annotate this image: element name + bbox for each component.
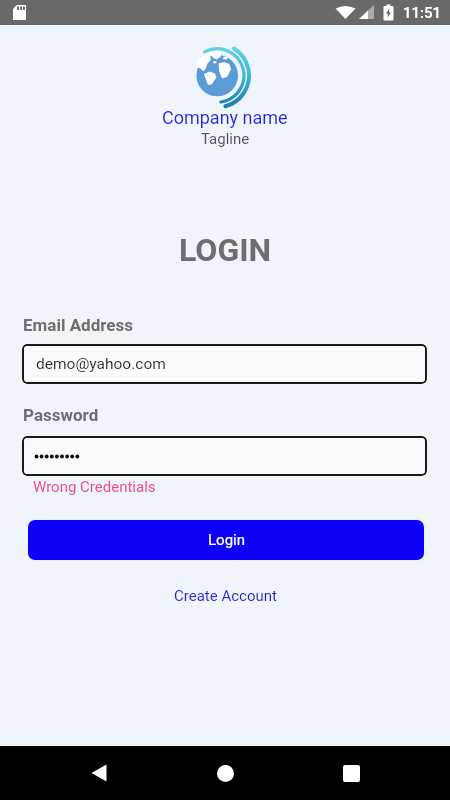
staticText: 11:51: [403, 4, 442, 22]
staticText: Wrong Credentials: [33, 478, 156, 496]
staticText: Login: [208, 531, 245, 549]
staticText: Tagline: [201, 130, 250, 148]
button[interactable]: demo@yahoo.com: [22, 344, 427, 384]
button[interactable]: [22, 436, 427, 476]
staticText: demo@yahoo.com: [36, 355, 166, 373]
staticText: Company name: [162, 107, 288, 128]
staticText: Email Address: [23, 315, 134, 335]
staticText: LOGIN: [179, 231, 272, 269]
button[interactable]: Login: [28, 520, 424, 560]
button[interactable]: [205, 753, 245, 793]
button[interactable]: [331, 753, 371, 793]
staticText: Password: [23, 405, 99, 425]
button[interactable]: Create Account: [174, 587, 277, 605]
button[interactable]: [79, 753, 119, 793]
